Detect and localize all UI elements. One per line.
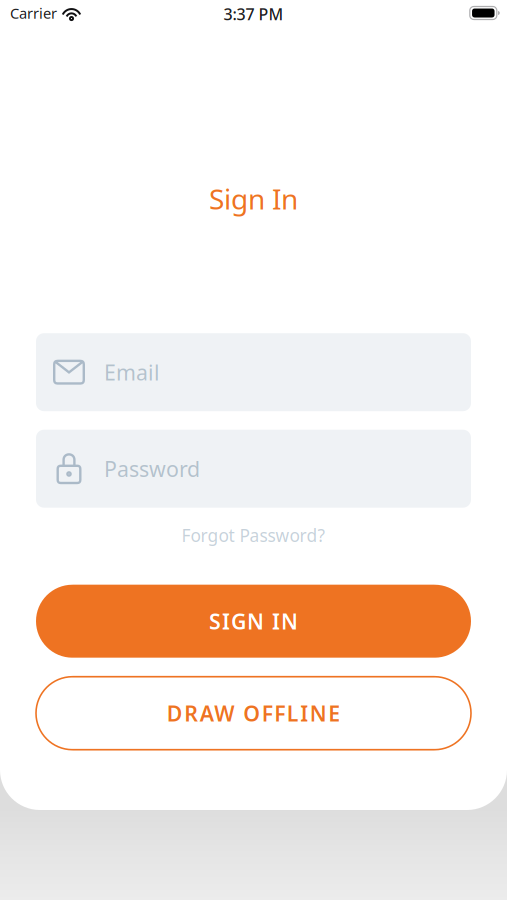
button[interactable]: DRAW OFFLINE	[36, 677, 471, 750]
staticText: SIGN IN	[209, 607, 298, 635]
button[interactable]: Email	[36, 333, 471, 411]
button[interactable]: Forgot Password?	[36, 508, 471, 563]
staticText: DRAW OFFLINE	[167, 699, 340, 727]
button[interactable]: SIGN IN	[36, 585, 471, 658]
staticText: Forgot Password?	[181, 524, 325, 547]
staticText: Carrier	[10, 3, 57, 23]
staticText: 3:37 PM	[223, 3, 283, 25]
staticText: Sign In	[209, 180, 298, 217]
staticText: Password	[104, 454, 200, 483]
staticText: Email	[104, 358, 160, 386]
button[interactable]: Password	[36, 430, 471, 508]
